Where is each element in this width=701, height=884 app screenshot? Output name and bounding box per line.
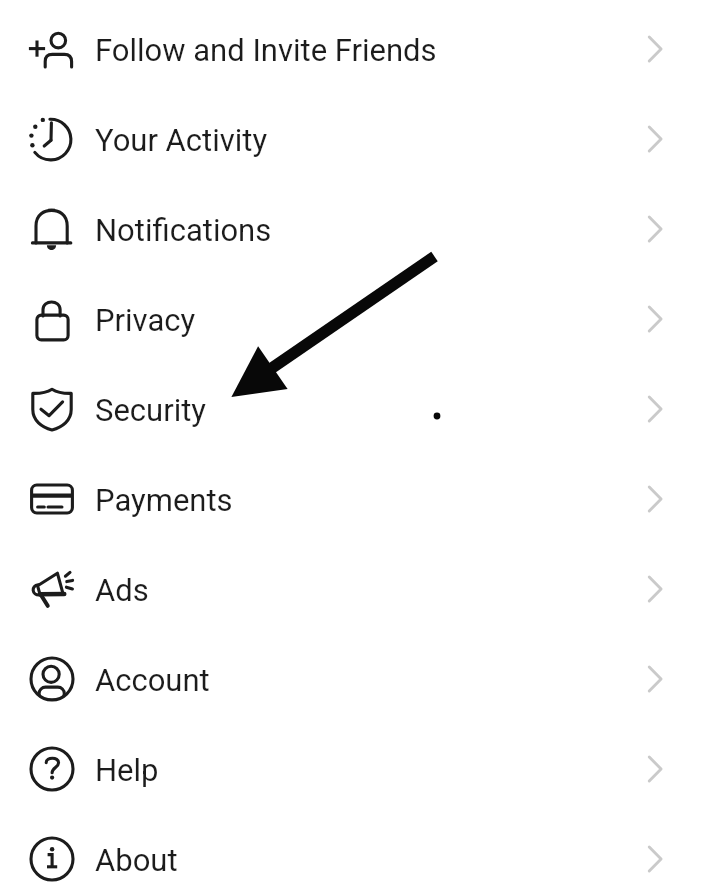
button[interactable]: About	[0, 814, 701, 884]
button[interactable]: Account	[0, 634, 701, 724]
button[interactable]: Follow and Invite Friends	[0, 4, 701, 94]
button[interactable]: Security	[0, 364, 701, 454]
staticText: Your Activity	[95, 122, 268, 158]
staticText: Account	[95, 662, 210, 698]
staticText: Ads	[95, 572, 149, 608]
staticText: Security	[95, 392, 207, 428]
staticText: About	[95, 842, 178, 878]
button[interactable]: Privacy	[0, 274, 701, 364]
button[interactable]: Notifications	[0, 184, 701, 274]
button[interactable]: Your Activity	[0, 94, 701, 184]
button[interactable]: Ads	[0, 544, 701, 634]
staticText: Help	[95, 752, 159, 788]
button[interactable]: Payments	[0, 454, 701, 544]
staticText: Payments	[95, 482, 233, 518]
staticText: Follow and Invite Friends	[95, 32, 437, 68]
staticText: Privacy	[95, 302, 196, 338]
button[interactable]: Help	[0, 724, 701, 814]
staticText: Notifications	[95, 212, 272, 248]
